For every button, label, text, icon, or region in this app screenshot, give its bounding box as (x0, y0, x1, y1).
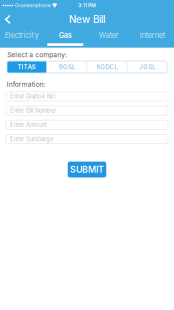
staticText: Graneenphone (15, 2, 51, 8)
staticText: JGSL (139, 63, 155, 71)
button[interactable]: Gas (43, 28, 87, 48)
button[interactable]: KGDCL (87, 61, 127, 73)
staticText: 3:11 PM (78, 2, 96, 8)
staticText: Internet (140, 31, 165, 40)
staticText: Enter Grahok No: (10, 93, 57, 100)
button[interactable]: TITAS (7, 61, 46, 73)
staticText: Enter Surcharge (10, 135, 53, 143)
staticText: Gas (59, 31, 72, 40)
staticText: Water (99, 31, 119, 40)
staticText: KGDCL (97, 63, 118, 71)
staticText: SUBMIT (70, 164, 104, 175)
button[interactable]: Water (87, 28, 130, 48)
button[interactable]: Internet (130, 28, 174, 48)
staticText: Enter Bill Number (10, 107, 56, 114)
staticText: Enter Amount (10, 121, 47, 128)
staticText: New Bill (69, 13, 105, 25)
staticText: TITAS (18, 63, 36, 71)
button[interactable]: SUBMIT (68, 162, 106, 177)
button[interactable]: Back (0, 11, 17, 28)
staticText: Electricity (5, 31, 39, 40)
button[interactable]: JGSL (127, 61, 167, 73)
button[interactable]: BGSL (47, 61, 87, 73)
staticText: Select a company: (7, 51, 67, 59)
button[interactable]: Electricity (0, 28, 43, 48)
staticText: BGSL (59, 63, 75, 71)
staticText: Information: (7, 80, 46, 88)
